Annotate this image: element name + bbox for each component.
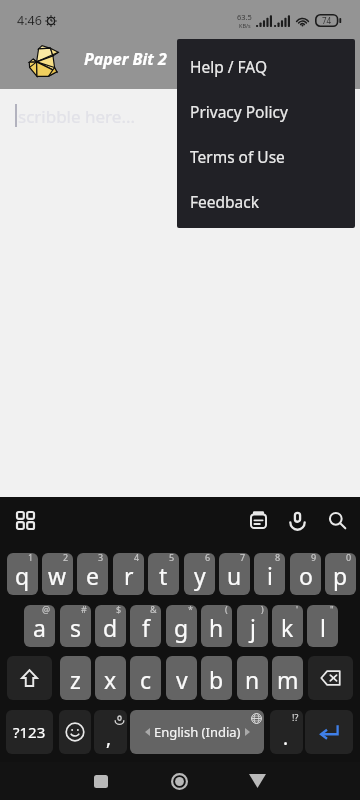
staticText: ( (225, 605, 228, 615)
staticText: r (124, 560, 134, 591)
staticText: , (106, 725, 112, 751)
staticText: n (245, 664, 260, 695)
staticText: 6 (205, 553, 211, 563)
button[interactable]: f (130, 605, 161, 647)
button[interactable]: . (270, 710, 303, 754)
staticText: 5 (169, 553, 175, 563)
button[interactable]: English (India) (130, 710, 264, 754)
button[interactable]: ?123 (6, 710, 53, 754)
button[interactable]: o (290, 553, 321, 595)
staticText: 63.5 (237, 12, 252, 22)
button[interactable]: Search (322, 505, 352, 535)
button[interactable]: s (60, 605, 91, 647)
button[interactable]: Feedback (177, 179, 355, 224)
staticText: l (320, 612, 326, 643)
button[interactable]: t (148, 553, 179, 595)
button[interactable]: Privacy Policy (177, 89, 355, 134)
staticText: 0 (346, 553, 352, 563)
button[interactable]: w (42, 553, 73, 595)
button[interactable]: l (307, 605, 338, 647)
staticText: q (15, 560, 30, 591)
button[interactable]: Help / FAQ (177, 44, 355, 89)
staticText: . (283, 725, 289, 751)
staticText: e (86, 560, 99, 591)
staticText: p (333, 560, 348, 591)
staticText: f (142, 612, 150, 643)
staticText: Paper Bit 2 (84, 48, 167, 70)
button[interactable]: v (166, 656, 197, 700)
staticText: 4:46 (17, 12, 42, 29)
button[interactable]: Enter (305, 710, 353, 754)
button[interactable]: d (95, 605, 126, 647)
staticText: Privacy Policy (190, 101, 288, 122)
staticText: x (104, 664, 117, 695)
button[interactable]: e (77, 553, 108, 595)
staticText: j (250, 612, 256, 643)
staticText: c (140, 664, 152, 695)
staticText: s (70, 612, 82, 643)
button[interactable]: m (272, 656, 303, 700)
button[interactable]: j (237, 605, 268, 647)
button[interactable]: Home (160, 762, 198, 800)
staticText: * (188, 605, 193, 615)
staticText: ' (296, 605, 299, 615)
staticText: @ (42, 605, 51, 615)
staticText: b (209, 664, 224, 695)
button[interactable]: Clipboard (243, 505, 273, 535)
button[interactable]: Keyboard apps (10, 505, 40, 535)
staticText: scribble here... (18, 105, 136, 128)
staticText: !? (292, 711, 299, 723)
staticText: i (267, 560, 273, 591)
button[interactable]: y (184, 553, 215, 595)
staticText: 7 (240, 553, 246, 563)
staticText: t (159, 560, 168, 591)
staticText: k (281, 612, 294, 643)
button[interactable]: n (237, 656, 268, 700)
staticText: o (299, 560, 313, 591)
button[interactable]: g (166, 605, 197, 647)
button[interactable]: p (325, 553, 356, 595)
staticText: 74 (322, 15, 332, 26)
staticText: w (48, 560, 67, 591)
staticText: 8 (275, 553, 281, 563)
staticText: h (209, 612, 224, 643)
button[interactable]: Recents (82, 762, 120, 800)
staticText: & (150, 605, 157, 615)
button[interactable]: r (113, 553, 144, 595)
staticText: u (227, 560, 242, 591)
button[interactable]: , (94, 710, 127, 754)
staticText: KB/s (239, 22, 251, 29)
staticText: v (176, 664, 188, 695)
staticText: Help / FAQ (190, 56, 268, 77)
staticText: ?123 (13, 722, 46, 742)
button[interactable]: Shift (7, 656, 52, 700)
staticText: y (194, 560, 206, 591)
button[interactable]: Hide keyboard (238, 762, 276, 800)
button[interactable]: a (24, 605, 55, 647)
staticText: 9 (311, 553, 317, 563)
button[interactable]: Emoji (59, 710, 91, 754)
staticText: " (330, 605, 334, 615)
staticText: # (81, 605, 87, 615)
staticText: g (174, 612, 189, 643)
staticText: a (33, 612, 46, 643)
button[interactable]: z (60, 656, 91, 700)
button[interactable]: i (254, 553, 285, 595)
button[interactable]: h (201, 605, 232, 647)
staticText: 3 (98, 553, 104, 563)
button[interactable]: x (95, 656, 126, 700)
staticText: m (277, 664, 299, 695)
staticText: d (103, 612, 118, 643)
staticText: 4 (134, 553, 140, 563)
button[interactable]: u (219, 553, 250, 595)
button[interactable]: b (201, 656, 232, 700)
button[interactable]: Backspace (308, 656, 353, 700)
staticText: Feedback (190, 191, 260, 212)
button[interactable]: c (130, 656, 161, 700)
staticText: 1 (28, 553, 34, 563)
button[interactable]: q (7, 553, 38, 595)
staticText: English (India) (154, 723, 241, 741)
button[interactable]: Terms of Use (177, 134, 355, 179)
button[interactable]: Voice input (282, 505, 312, 535)
button[interactable]: k (272, 605, 303, 647)
